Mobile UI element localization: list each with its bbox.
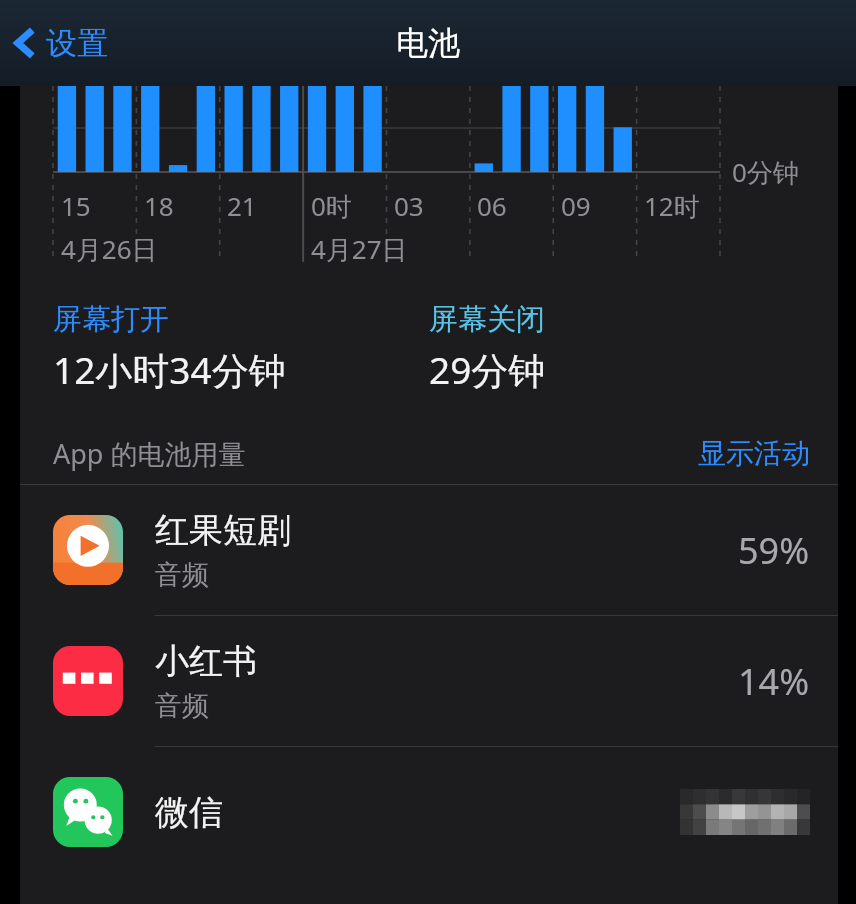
staticText: 12时 [644,188,700,224]
staticText: 06 [477,188,507,223]
staticText: 屏幕打开 [53,301,169,338]
staticText: 0时 [311,188,352,224]
button[interactable]: 设置 [6,17,114,69]
button[interactable]: 显示活动 [698,436,810,471]
button[interactable]: 微信 [20,747,838,877]
staticText: 设置 [46,24,108,63]
staticText: 微信 [155,791,223,834]
staticText: 0分钟 [732,154,799,190]
staticText: 红果短剧 [155,509,291,552]
staticText: 29分钟 [429,344,546,395]
staticText: 14% [738,657,810,706]
button[interactable]: 小红书 [20,616,838,747]
staticText: 03 [394,188,424,223]
staticText: 4月27日 [311,231,408,267]
staticText: 59% [738,526,810,575]
staticText: 21 [227,188,257,223]
staticText: 小红书 [155,640,257,683]
staticText: 18 [144,188,174,223]
staticText: App 的电池用量 [53,435,246,472]
staticText: 音频 [155,689,209,723]
staticText: 12小时34分钟 [53,344,286,395]
staticText: 电池 [396,23,460,63]
staticText: 显示活动 [698,436,810,471]
staticText: 4月26日 [61,231,158,267]
staticText: 15 [61,188,91,223]
staticText: 音频 [155,558,209,592]
button[interactable]: 红果短剧 [20,485,838,616]
staticText: 屏幕关闭 [429,301,545,338]
staticText: 09 [561,188,591,223]
